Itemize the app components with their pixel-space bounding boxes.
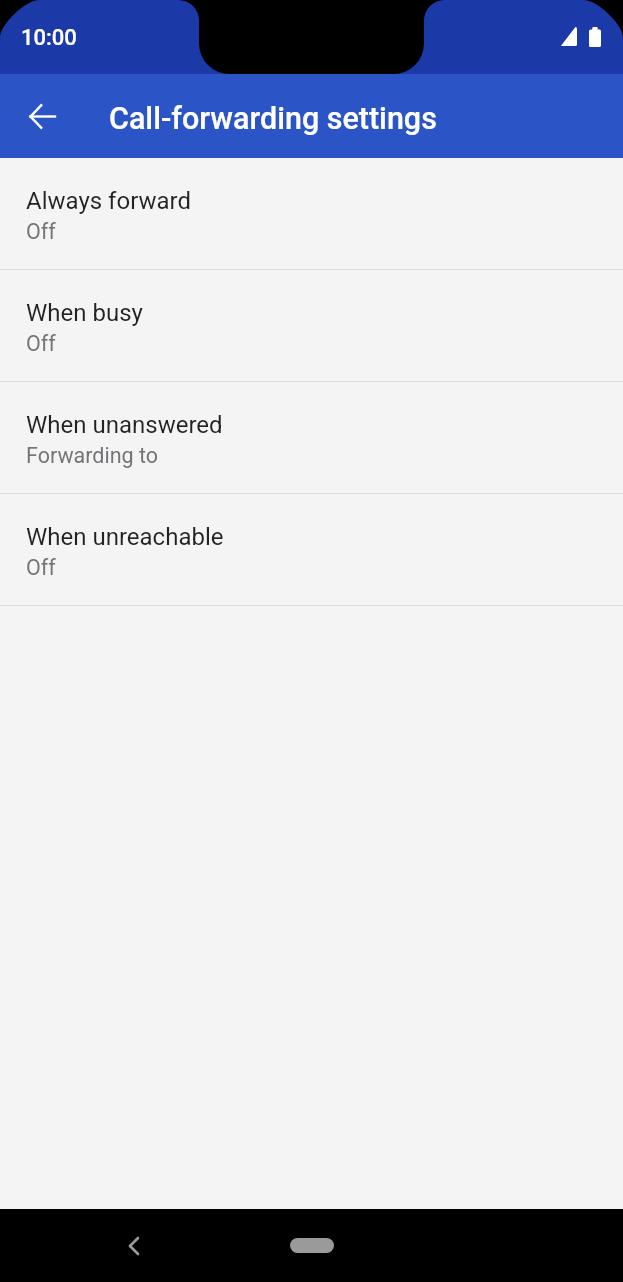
other: Signal strength <box>558 27 577 46</box>
staticText: Forwarding to <box>26 443 159 468</box>
staticText: When busy <box>26 299 143 327</box>
staticText: When unreachable <box>26 523 224 551</box>
button[interactable]: When busy <box>0 270 623 381</box>
button[interactable]: Back <box>110 1222 158 1270</box>
staticText: 10:00 <box>21 25 77 51</box>
staticText: Always forward <box>26 187 191 215</box>
button[interactable]: Back <box>18 92 66 140</box>
staticText: Off <box>26 555 56 580</box>
button[interactable]: Always forward <box>0 158 623 269</box>
staticText: When unanswered <box>26 411 223 439</box>
staticText: Off <box>26 219 56 244</box>
button[interactable]: When unanswered <box>0 382 623 493</box>
button[interactable]: When unreachable <box>0 494 623 605</box>
other: Battery <box>589 27 601 47</box>
button[interactable]: Home <box>290 1238 334 1253</box>
staticText: Off <box>26 331 56 356</box>
staticText: Call-forwarding settings <box>109 101 437 137</box>
